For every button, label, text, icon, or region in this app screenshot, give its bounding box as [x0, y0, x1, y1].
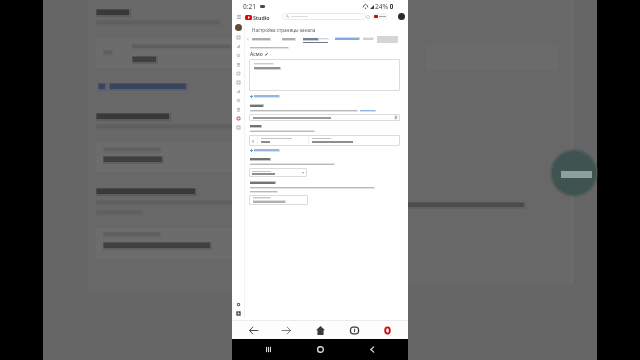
button[interactable]: Tabs [341, 321, 367, 339]
button[interactable]: Nav item 9 [234, 114, 242, 122]
button[interactable]: Изменить название [265, 53, 268, 56]
button[interactable]: Channel avatar [235, 24, 242, 31]
staticText: Настройка страницы канала [252, 27, 316, 33]
button[interactable]: Back [356, 339, 388, 360]
staticText: Асмо [250, 51, 263, 58]
button[interactable]: URL канала [249, 114, 400, 121]
button[interactable]: Брендинг [282, 36, 298, 42]
button[interactable]: Send feedback [234, 309, 242, 317]
button[interactable]: Перейти на канал [335, 36, 361, 42]
button[interactable]: Help [234, 300, 242, 308]
button[interactable]: Back [240, 321, 266, 339]
button[interactable]: Menu [235, 13, 242, 20]
button[interactable]: Главная страница [252, 36, 272, 42]
button[interactable]: Nav item 1 [234, 42, 242, 50]
button[interactable]: Create [372, 13, 388, 20]
button[interactable]: Электронная почта [249, 195, 308, 205]
button[interactable]: Nav item 0 [234, 33, 242, 41]
button[interactable]: Nav item 4 [234, 69, 242, 77]
button[interactable]: Nav item 2 [234, 51, 242, 59]
button[interactable]: Nav item 5 [234, 78, 242, 86]
button[interactable]: Account [398, 13, 405, 20]
button[interactable]: Search [282, 13, 366, 20]
button[interactable]: Ссылка на баннере [249, 168, 307, 177]
button[interactable]: Основные сведения [303, 36, 331, 44]
button[interactable]: Nav item 8 [234, 105, 242, 113]
staticText: 0:21 [243, 2, 257, 11]
button[interactable]: Отмена [363, 36, 375, 42]
button[interactable]: Help [364, 13, 371, 20]
button[interactable]: Nav item 7 [234, 96, 242, 104]
button[interactable]: Forward [273, 321, 299, 339]
staticText: 24% [375, 2, 389, 11]
button[interactable]: Home [304, 339, 336, 360]
button[interactable]: Nav item 10 [234, 123, 242, 131]
button[interactable]: Home [307, 321, 333, 339]
button[interactable]: Добавить перевод [250, 94, 286, 99]
button[interactable]: Opera menu [374, 321, 400, 339]
button[interactable]: Nav item 6 [234, 87, 242, 95]
button[interactable]: Описание канала [249, 59, 400, 91]
staticText: Studio [253, 14, 270, 21]
button[interactable]: Studio [245, 14, 270, 21]
button[interactable]: Добавить ссылку [250, 148, 286, 153]
button[interactable]: Nav item 3 [234, 60, 242, 68]
button[interactable]: Recent apps [252, 339, 284, 360]
